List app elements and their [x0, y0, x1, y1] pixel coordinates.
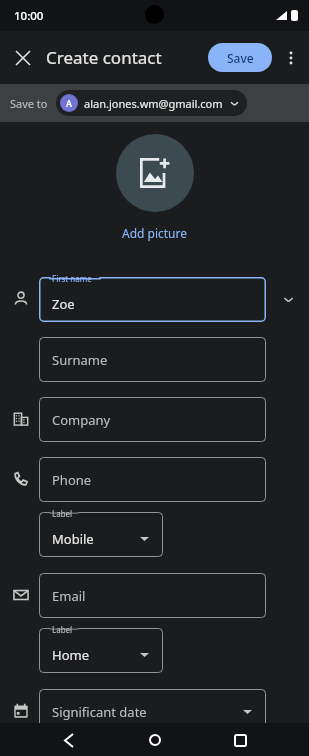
button[interactable]: Add picture [116, 223, 194, 243]
staticText: First name [52, 273, 92, 284]
button[interactable]: Add picture [116, 134, 194, 212]
button[interactable]: Close [7, 42, 39, 74]
staticText: Label [52, 508, 73, 519]
staticText: 10:00 [14, 8, 44, 24]
staticText: A [66, 97, 72, 109]
button[interactable]: Surname [39, 337, 266, 382]
staticText: Save [227, 50, 254, 66]
staticText: Zoe [52, 295, 75, 313]
button[interactable]: Phone [39, 457, 266, 502]
button[interactable]: Significant date [39, 689, 266, 734]
staticText: Home [52, 646, 89, 664]
staticText: Company [52, 411, 111, 429]
staticText: Mobile [52, 530, 94, 548]
staticText: Email [52, 587, 86, 605]
staticText: Phone [52, 471, 92, 489]
button[interactable]: Email [9, 583, 33, 607]
staticText: Significant date [52, 703, 147, 721]
staticText: Label [52, 624, 73, 635]
staticText: Create contact [46, 46, 162, 69]
staticText: alan.jones.wm@gmail.com [84, 96, 223, 111]
button[interactable]: Significant date [9, 699, 33, 723]
staticText: Add picture [122, 225, 188, 241]
staticText: Surname [52, 351, 108, 369]
button[interactable]: Label [39, 628, 163, 673]
button[interactable]: Home [139, 724, 171, 756]
button[interactable]: Recent apps [224, 724, 256, 756]
button[interactable]: Label [39, 512, 163, 557]
staticText: Save to [10, 96, 48, 111]
button[interactable]: Save [208, 43, 272, 72]
button[interactable]: Phone [9, 467, 33, 491]
button[interactable]: A [56, 90, 247, 116]
button[interactable]: Company [39, 397, 266, 442]
button[interactable]: First name [39, 277, 266, 322]
button[interactable]: Name [9, 287, 33, 311]
button[interactable]: Company [9, 407, 33, 431]
button[interactable]: More options [276, 43, 306, 73]
button[interactable]: Expand name fields [277, 288, 300, 311]
button[interactable]: Back [53, 724, 85, 756]
button[interactable]: Email [39, 573, 266, 618]
